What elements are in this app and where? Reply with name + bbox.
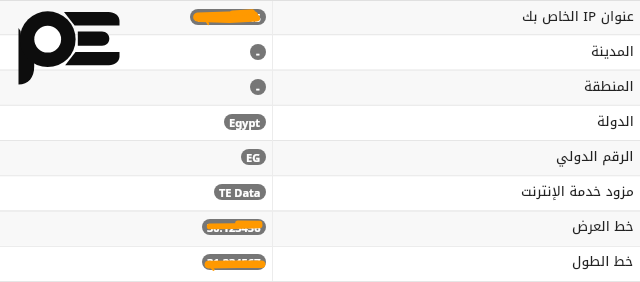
button[interactable]: - [0,35,640,70]
staticText: TE Data [219,185,261,200]
button[interactable]: Egypt [0,105,640,140]
staticText: EG [246,150,261,165]
staticText: عنوان IP الخاص بك [522,4,634,29]
staticText: مزود خدمة الإنترنت [521,179,634,204]
button[interactable]: 30.123456 [0,210,640,245]
staticText: 30.123456 [207,220,261,235]
staticText: الدولة [597,109,634,134]
button[interactable]: TE Data [0,175,640,210]
staticText: - [256,80,260,95]
button[interactable]: 41.35.123.45 [0,0,640,35]
staticText: خط العرض [572,214,634,239]
button[interactable]: EG [0,140,640,175]
button[interactable]: - [0,70,640,105]
button[interactable]: 31.234567 [0,245,640,280]
staticText: 41.35.123.45 [195,10,261,25]
staticText: 31.234567 [207,255,261,270]
staticText: الرقم الدولي [556,144,634,169]
staticText: - [256,45,260,60]
staticText: خط الطول [572,249,634,274]
staticText: المنطقة [584,74,634,99]
staticText: Egypt [229,115,261,130]
staticText: المدينة [591,39,634,64]
